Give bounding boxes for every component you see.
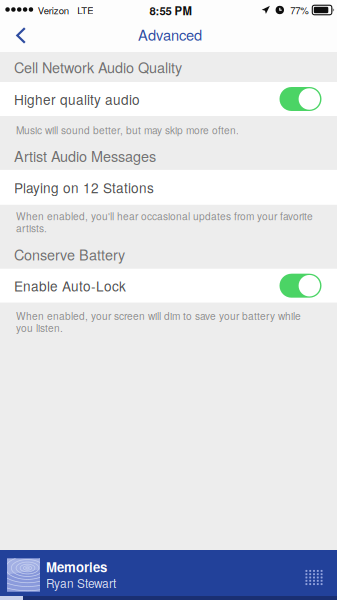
staticText: Enable Auto-Lock — [14, 276, 126, 295]
staticText: Advanced — [138, 24, 202, 45]
staticText: Higher quality audio — [14, 89, 140, 109]
staticText: LTE — [77, 3, 93, 17]
staticText: Memories — [46, 557, 107, 576]
staticText: Verizon — [38, 3, 69, 17]
button[interactable]: More — [295, 559, 333, 595]
staticText: Cell Network Audio Quality — [14, 57, 182, 77]
button[interactable]: Memories — [0, 550, 337, 600]
staticText: Playing on 12 Stations — [14, 178, 154, 197]
staticText: 8:55 PM — [149, 2, 191, 19]
staticText: Conserve Battery — [14, 244, 125, 264]
staticText: When enabled, you'll hear occasional upd… — [16, 210, 313, 234]
staticText: Ryan Stewart — [46, 574, 116, 591]
button[interactable]: Higher quality audio — [265, 82, 321, 116]
button[interactable]: Back — [0, 20, 42, 52]
button[interactable]: Enable Auto-Lock — [265, 269, 321, 303]
button[interactable]: Playing on 12 Stations — [0, 170, 337, 205]
staticText: Artist Audio Messages — [14, 146, 156, 166]
staticText: Music will sound better, but may skip mo… — [16, 124, 239, 136]
staticText: 77% — [290, 3, 309, 17]
staticText: When enabled, your screen will dim to sa… — [16, 310, 301, 333]
